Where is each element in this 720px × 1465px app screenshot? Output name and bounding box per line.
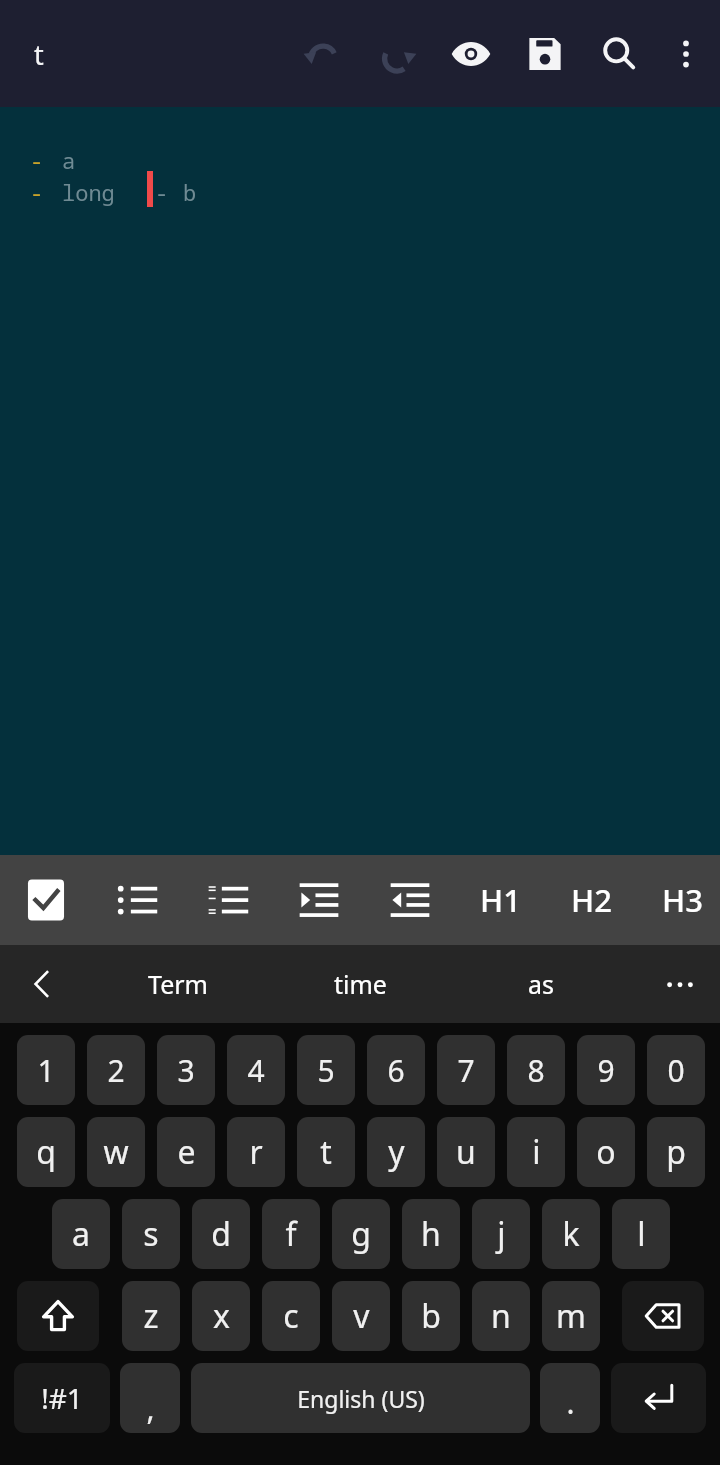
staticText: H2 [571,879,612,921]
staticText: q [36,1130,56,1174]
button[interactable]: !#1 [14,1363,110,1433]
button[interactable]: Bullet list [91,855,182,945]
staticText: d [211,1212,231,1256]
staticText: a [62,145,76,175]
button[interactable]: v [332,1281,390,1351]
button[interactable]: z [122,1281,180,1351]
button[interactable]: 3 [157,1035,215,1105]
button[interactable]: More options [656,0,716,107]
button[interactable]: p [647,1117,705,1187]
button[interactable]: 6 [367,1035,425,1105]
button[interactable]: x [192,1281,250,1351]
button[interactable]: as [466,945,616,1023]
button[interactable]: u [437,1117,495,1187]
button[interactable]: h [402,1199,460,1269]
button[interactable]: 2 [87,1035,145,1105]
button[interactable]: More suggestions [640,945,720,1023]
button[interactable]: 7 [437,1035,495,1105]
button[interactable]: Save [508,0,582,107]
button[interactable]: Outdent [364,855,455,945]
staticText: c [283,1294,299,1338]
button[interactable]: g [332,1199,390,1269]
button[interactable]: 0 [647,1035,705,1105]
button[interactable]: Search [582,0,656,107]
button[interactable]: 8 [507,1035,565,1105]
button[interactable]: t [10,25,68,83]
button[interactable]: English (US) [191,1363,530,1433]
button[interactable]: n [472,1281,530,1351]
button[interactable]: H1 [455,855,546,945]
button[interactable]: Term [103,945,253,1023]
staticText: , [146,1388,155,1429]
button[interactable]: a [52,1199,110,1269]
staticText: English (US) [297,1383,425,1414]
button[interactable]: b [402,1281,460,1351]
button[interactable]: m [542,1281,600,1351]
staticText: - [30,145,44,175]
staticText: . [566,1382,575,1423]
staticText: x [213,1294,230,1338]
button[interactable]: 1 [17,1035,75,1105]
staticText: 6 [387,1050,405,1091]
button[interactable]: , [120,1363,180,1433]
button[interactable]: H3 [637,855,720,945]
button[interactable]: f [262,1199,320,1269]
button[interactable]: Backspace [622,1281,704,1351]
button[interactable]: Redo [360,0,434,107]
button[interactable]: . [540,1363,600,1433]
button[interactable]: 4 [227,1035,285,1105]
button[interactable]: r [227,1117,285,1187]
button[interactable]: e [157,1117,215,1187]
staticText: f [285,1212,297,1256]
button[interactable]: w [87,1117,145,1187]
staticText: 4 [247,1050,265,1091]
staticText: 9 [597,1050,615,1091]
button[interactable]: Undo [286,0,360,107]
button[interactable]: 5 [297,1035,355,1105]
button[interactable]: Checkbox [0,855,91,945]
staticText: w [103,1130,129,1174]
button[interactable]: y [367,1117,425,1187]
staticText: a [72,1212,90,1256]
button[interactable]: j [472,1199,530,1269]
button[interactable]: t [297,1117,355,1187]
staticText: u [456,1130,476,1174]
staticText: i [532,1130,541,1174]
staticText: n [491,1294,511,1338]
staticText: 7 [457,1050,475,1091]
button[interactable]: H2 [546,855,637,945]
staticText: s [143,1212,159,1256]
staticText: long [62,177,115,207]
staticText: h [421,1212,441,1256]
staticText: !#1 [41,1379,83,1417]
button[interactable]: d [192,1199,250,1269]
staticText: Term [148,967,208,1001]
staticText: y [388,1130,405,1174]
staticText: 5 [317,1050,335,1091]
staticText: p [666,1130,686,1174]
button[interactable]: Enter [611,1363,706,1433]
button[interactable]: Numbered list [182,855,273,945]
button[interactable]: Indent [273,855,364,945]
button[interactable]: q [17,1117,75,1187]
button[interactable]: time [285,945,435,1023]
button[interactable]: i [507,1117,565,1187]
button[interactable]: s [122,1199,180,1269]
staticText: as [528,967,555,1001]
staticText: - [155,177,169,207]
button[interactable]: l [612,1199,670,1269]
staticText: 0 [667,1050,685,1091]
button[interactable]: c [262,1281,320,1351]
button[interactable]: o [577,1117,635,1187]
staticText: g [351,1212,371,1256]
staticText: 1 [37,1050,55,1091]
staticText: 2 [107,1050,125,1091]
staticText: 8 [527,1050,545,1091]
button[interactable]: Preview [434,0,508,107]
button[interactable]: 9 [577,1035,635,1105]
staticText: r [249,1130,263,1174]
button[interactable]: Back [8,945,78,1023]
staticText: H3 [662,879,703,921]
button[interactable]: Shift [17,1281,99,1351]
button[interactable]: k [542,1199,600,1269]
